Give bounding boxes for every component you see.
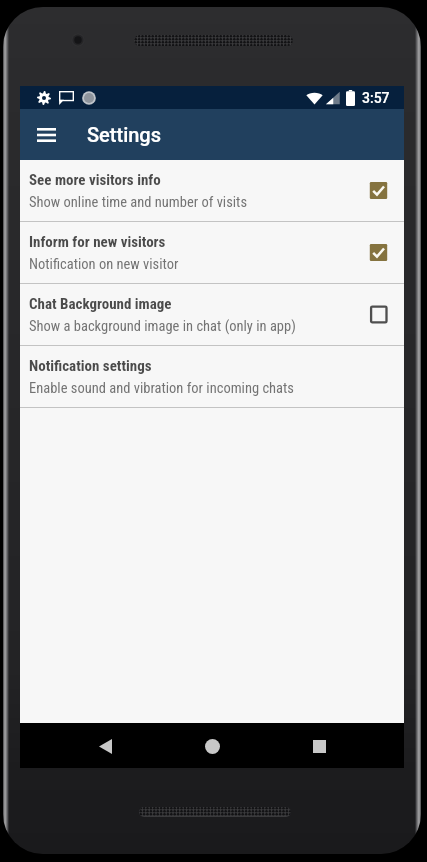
button[interactable]: Notification settings <box>20 346 404 408</box>
staticText: Settings <box>87 123 162 146</box>
button[interactable]: Recent apps <box>297 724 341 768</box>
button[interactable]: Inform for new visitors <box>20 222 404 284</box>
button[interactable]: Back <box>83 724 127 768</box>
staticText: Show online time and number of visits <box>29 194 248 211</box>
staticText: Notification on new visitor <box>29 256 179 273</box>
staticText: Inform for new visitors <box>29 233 166 251</box>
button[interactable]: Chat Background image <box>20 284 404 346</box>
button[interactable]: Open navigation menu <box>28 109 64 160</box>
staticText: See more visitors info <box>29 171 161 189</box>
button[interactable]: See more visitors info <box>20 160 404 222</box>
staticText: Chat Background image <box>29 295 172 313</box>
staticText: Notification settings <box>29 357 152 375</box>
staticText: 3:57 <box>362 90 390 106</box>
button[interactable]: Home <box>190 724 234 768</box>
staticText: Enable sound and vibration for incoming … <box>29 380 294 397</box>
staticText: Show a background image in chat (only in… <box>29 318 296 335</box>
